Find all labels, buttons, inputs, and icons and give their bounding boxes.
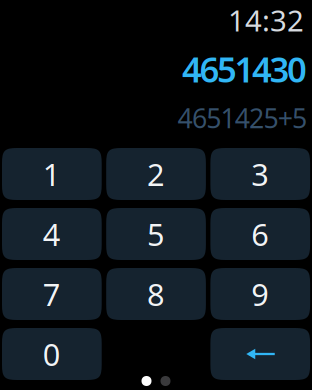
button[interactable]: 3 xyxy=(210,148,310,200)
staticText: 2 xyxy=(147,154,165,194)
button[interactable]: 1 xyxy=(2,148,102,200)
staticText: 1 xyxy=(43,154,61,194)
staticText: 3 xyxy=(251,154,269,194)
staticText: 4 xyxy=(43,214,61,254)
button[interactable]: 2 xyxy=(106,148,206,200)
button[interactable]: 5 xyxy=(106,208,206,260)
button[interactable]: 4 xyxy=(2,208,102,260)
button[interactable]: 9 xyxy=(210,268,310,320)
staticText: 8 xyxy=(147,274,165,314)
button[interactable]: Delete xyxy=(210,328,310,380)
button[interactable]: 0 xyxy=(2,328,102,380)
staticText: 9 xyxy=(251,274,269,314)
staticText: 5 xyxy=(147,214,165,254)
button[interactable]: 7 xyxy=(2,268,102,320)
staticText: 0 xyxy=(43,334,61,374)
button[interactable]: 6 xyxy=(210,208,310,260)
staticText: 4651425+5 xyxy=(178,100,307,136)
staticText: 14:32 xyxy=(228,0,304,39)
staticText: 4651430 xyxy=(182,46,307,92)
staticText: 6 xyxy=(251,214,269,254)
staticText: 7 xyxy=(43,274,61,314)
button[interactable]: 8 xyxy=(106,268,206,320)
